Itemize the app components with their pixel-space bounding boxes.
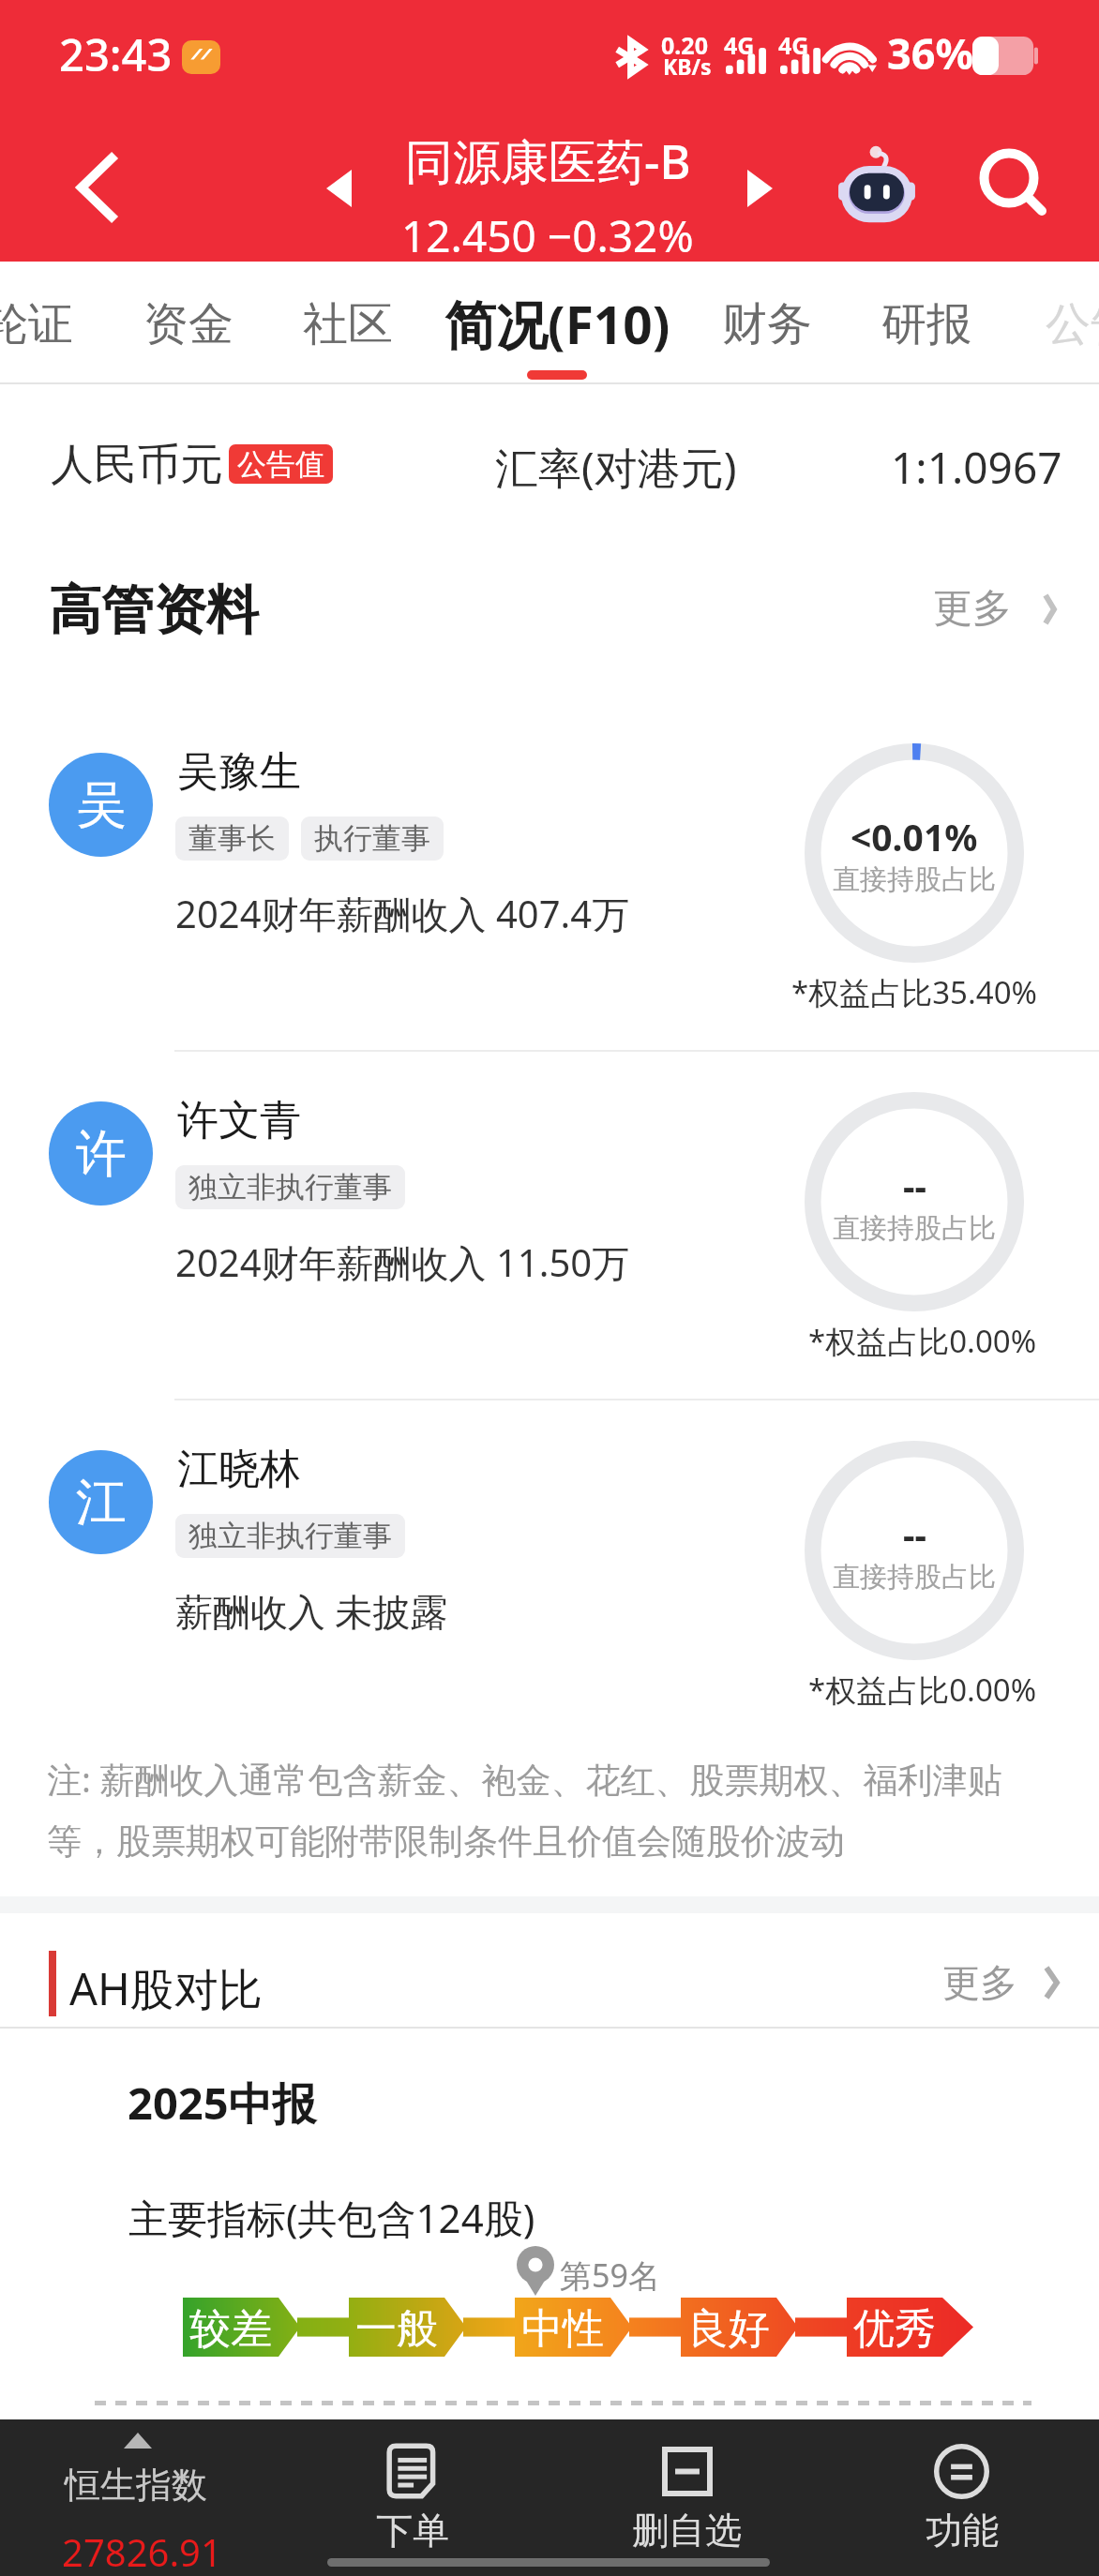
staticText: 下单 [376,2508,449,2554]
staticText: 4G [778,29,809,61]
staticText: 江 [76,1471,127,1535]
button[interactable]: Back [38,125,156,250]
staticText: 36% [887,24,974,82]
button[interactable]: 江 [0,1397,1099,1745]
staticText: 12.450 −0.32% [401,206,694,265]
staticText: 吴 [76,773,127,837]
staticText: 资金 [143,296,233,352]
staticText: AH股对比 [69,1958,263,2018]
staticText: 许 [76,1122,127,1186]
staticText: 功能 [926,2508,999,2554]
staticText: 主要指标(共包含124股) [128,2191,535,2244]
button[interactable]: 轮证 [0,277,96,381]
staticText: 公告 [1046,296,1099,352]
staticText: 恒生指数 [65,2463,207,2508]
staticText: 江晓林 [177,1444,301,1495]
staticText: *权益占比0.00% [808,1320,1037,1362]
staticText: 较差 [189,2303,272,2355]
staticText: 更多 [933,584,1012,634]
staticText: 轮证 [0,296,73,352]
button[interactable]: Previous stock [296,156,381,221]
button[interactable]: 简况(F10) [423,277,691,381]
button[interactable]: 功能 [824,2419,1099,2576]
button[interactable]: 研报 [859,277,993,381]
staticText: 社区 [303,296,393,352]
staticText: 1:1.0967 [891,438,1062,497]
button[interactable]: 公告 [1023,277,1099,381]
button[interactable]: 删自选 [549,2419,824,2576]
staticText: KB/s [663,52,712,81]
staticText: 独立非执行董事 [188,1518,392,1554]
staticText: 2024财年薪酬收入 407.4万 [175,888,630,939]
staticText: 公告值 [237,446,324,483]
staticText: 高管资料 [49,577,259,644]
staticText: 第59名 [560,2254,660,2297]
staticText: 0.20 [661,29,708,61]
button[interactable]: Next stock [717,156,802,221]
staticText: 研报 [881,296,971,352]
staticText: 薪酬收入 未披露 [175,1585,448,1637]
staticText: 中性 [521,2303,604,2355]
staticText: 独立非执行董事 [188,1169,392,1206]
staticText: 27826.91 [62,2526,222,2576]
staticText: 注: 薪酬收入通常包含薪金、袍金、花红、股票期权、福利津贴 [47,1755,1002,1803]
button[interactable]: AH股对比 [0,1913,1099,2027]
button[interactable]: 社区 [280,277,415,381]
staticText: 人民币元 [51,438,223,492]
staticText: 4G [724,29,755,61]
staticText: 等，股票期权可能附带限制条件且价值会随股价波动 [47,1820,845,1864]
button[interactable]: 吴 [0,699,1099,1048]
staticText: -- [903,1509,926,1559]
staticText: <0.01% [851,812,978,861]
staticText: 直接持股占比 [833,1560,996,1595]
button[interactable]: 下单 [275,2419,549,2576]
button[interactable]: 资金 [121,277,256,381]
staticText: 董事长 [188,820,276,857]
staticText: 同源康医药-B [405,127,691,193]
button[interactable]: 恒生指数 [0,2419,275,2576]
staticText: 财务 [722,296,812,352]
staticText: 吴豫生 [177,746,301,798]
staticText: 23:43 [59,24,173,84]
staticText: 直接持股占比 [833,1211,996,1246]
staticText: 更多 [942,1959,1017,2006]
button[interactable]: 财务 [700,277,834,381]
staticText: 优秀 [853,2303,936,2355]
staticText: 2024财年薪酬收入 11.50万 [175,1236,630,1288]
staticText: 良好 [687,2303,770,2355]
button[interactable]: 高管资料 [0,544,1099,667]
staticText: 删自选 [632,2508,742,2554]
button[interactable]: AI assistant [825,131,928,232]
staticText: *权益占比0.00% [808,1669,1037,1711]
staticText: -- [903,1161,926,1210]
staticText: 汇率(对港元) [495,438,737,497]
staticText: 执行董事 [314,820,430,857]
staticText: 许文青 [177,1095,301,1146]
staticText: 一般 [355,2303,438,2355]
button[interactable]: Search [966,131,1060,232]
staticText: *权益占比35.40% [791,971,1037,1013]
button[interactable]: 许 [0,1048,1099,1397]
staticText: 直接持股占比 [833,862,996,897]
staticText: 简况(F10) [444,289,670,359]
staticText: 2025中报 [128,2073,317,2133]
